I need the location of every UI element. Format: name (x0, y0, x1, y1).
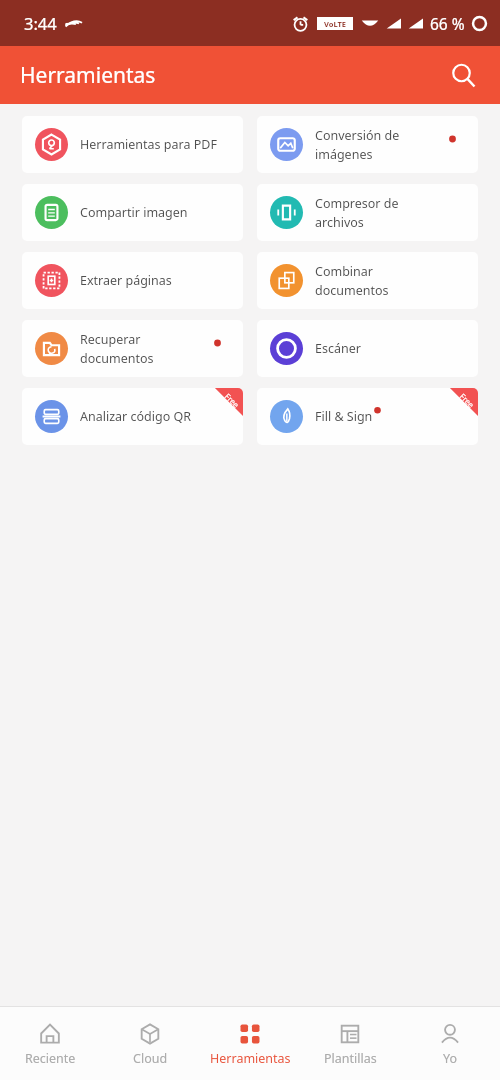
staticText: Cloud (133, 1050, 168, 1067)
button[interactable]: Combinar (257, 252, 478, 309)
staticText: Yo (443, 1050, 458, 1067)
staticText: 66 % (430, 13, 465, 34)
button[interactable]: Escáner (257, 320, 478, 377)
staticText: documentos (315, 282, 389, 299)
staticText: imágenes (315, 146, 373, 163)
staticText: Plantillas (324, 1050, 377, 1067)
button[interactable]: Compartir imagen (22, 184, 243, 241)
staticText: Analizar código QR (80, 408, 191, 425)
staticText: Extraer páginas (80, 272, 172, 289)
button[interactable]: Herramientas (200, 1015, 300, 1073)
staticText: Compresor de (315, 195, 399, 212)
button[interactable]: Buscar (442, 54, 484, 96)
button[interactable]: Recuperar (22, 320, 243, 377)
button[interactable]: Free (257, 388, 478, 445)
staticText: Herramientas para PDF (80, 136, 217, 153)
staticText: documentos (80, 350, 154, 367)
staticText: Fill & Sign (315, 408, 373, 425)
staticText: Combinar (315, 263, 373, 280)
staticText: archivos (315, 214, 364, 231)
button[interactable]: Reciente (0, 1015, 100, 1073)
staticText: VoLTE (324, 19, 346, 29)
button[interactable]: Extraer páginas (22, 252, 243, 309)
staticText: Escáner (315, 340, 361, 357)
staticText: Herramientas (210, 1050, 291, 1067)
button[interactable]: Herramientas (20, 61, 156, 90)
button[interactable]: Free (22, 388, 243, 445)
staticText: Conversión de (315, 127, 400, 144)
button[interactable]: Cloud (100, 1015, 200, 1073)
staticText: Recuperar (80, 331, 141, 348)
button[interactable]: Compresor de (257, 184, 478, 241)
staticText: Herramientas (20, 61, 156, 90)
staticText: Reciente (25, 1050, 76, 1067)
staticText: Free (223, 391, 242, 410)
staticText: 3:44 (24, 12, 57, 34)
button[interactable]: Plantillas (300, 1015, 400, 1073)
button[interactable]: Herramientas para PDF (22, 116, 243, 173)
button[interactable]: Yo (400, 1015, 500, 1073)
staticText: Free (458, 391, 477, 410)
button[interactable]: Conversión de (257, 116, 478, 173)
staticText: Compartir imagen (80, 204, 188, 221)
